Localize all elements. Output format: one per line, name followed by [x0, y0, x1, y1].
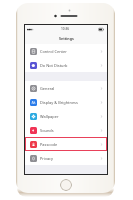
button[interactable]: Passcode	[25, 137, 107, 151]
staticText: Display & Brightness	[40, 100, 78, 105]
staticText: General	[40, 86, 55, 91]
button[interactable]: Privacy	[25, 151, 107, 165]
staticText: Sounds	[40, 128, 54, 133]
staticText: 10:36	[61, 27, 70, 31]
button[interactable]: Display & Brightness	[25, 95, 107, 109]
staticText: Control Center	[40, 49, 67, 54]
staticText: Do Not Disturb	[40, 63, 68, 68]
button[interactable]: Wallpaper	[25, 109, 107, 123]
staticText: Settings	[59, 36, 74, 41]
button[interactable]: Do Not Disturb	[25, 58, 107, 72]
button[interactable]: Control Center	[25, 44, 107, 58]
staticText: Wallpaper	[40, 114, 59, 119]
staticText: Passcode	[40, 142, 58, 147]
button[interactable]: General	[25, 81, 107, 95]
button[interactable]: Sounds	[25, 123, 107, 137]
button[interactable]: Home	[60, 179, 72, 191]
staticText: Privacy	[40, 156, 53, 161]
